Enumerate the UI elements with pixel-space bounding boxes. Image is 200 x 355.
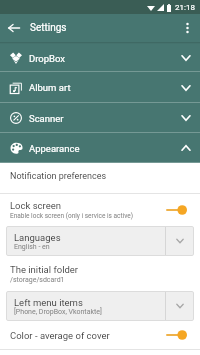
staticText: Enable lock screen (only i service is ac… (10, 212, 133, 220)
button[interactable]: Back (0, 14, 28, 42)
button[interactable]: DropBox (0, 44, 200, 72)
button[interactable]: Languages (6, 226, 194, 256)
button[interactable]: The initial folder (0, 256, 200, 291)
staticText: Languages (14, 232, 61, 243)
button[interactable]: Scanner (0, 103, 200, 133)
staticText: Settings (30, 22, 67, 34)
staticText: English - en (14, 243, 50, 251)
staticText: Scanner (29, 113, 64, 124)
staticText: Lock screen (10, 200, 62, 211)
staticText: Color - average of cover (10, 330, 110, 341)
staticText: The initial folder (10, 264, 79, 275)
staticText: DropBox (29, 53, 66, 64)
button[interactable]: Album art (0, 72, 200, 103)
staticText: Left menu items (14, 297, 83, 308)
staticText: 21:18 (175, 3, 195, 12)
staticText: Appearance (29, 143, 80, 154)
button[interactable]: More options (174, 15, 200, 41)
staticText: Album art (29, 82, 71, 93)
staticText: /storage/sdcard1 (10, 276, 65, 284)
staticText: [Phone, DropBox, Vkontakte] (14, 308, 102, 316)
button[interactable]: Color - average of cover (0, 321, 200, 349)
button[interactable]: Lock screen (0, 194, 200, 226)
button[interactable]: Appearance (0, 133, 200, 163)
button[interactable]: Left menu items (6, 291, 194, 321)
staticText: Notification preferences (10, 171, 107, 182)
